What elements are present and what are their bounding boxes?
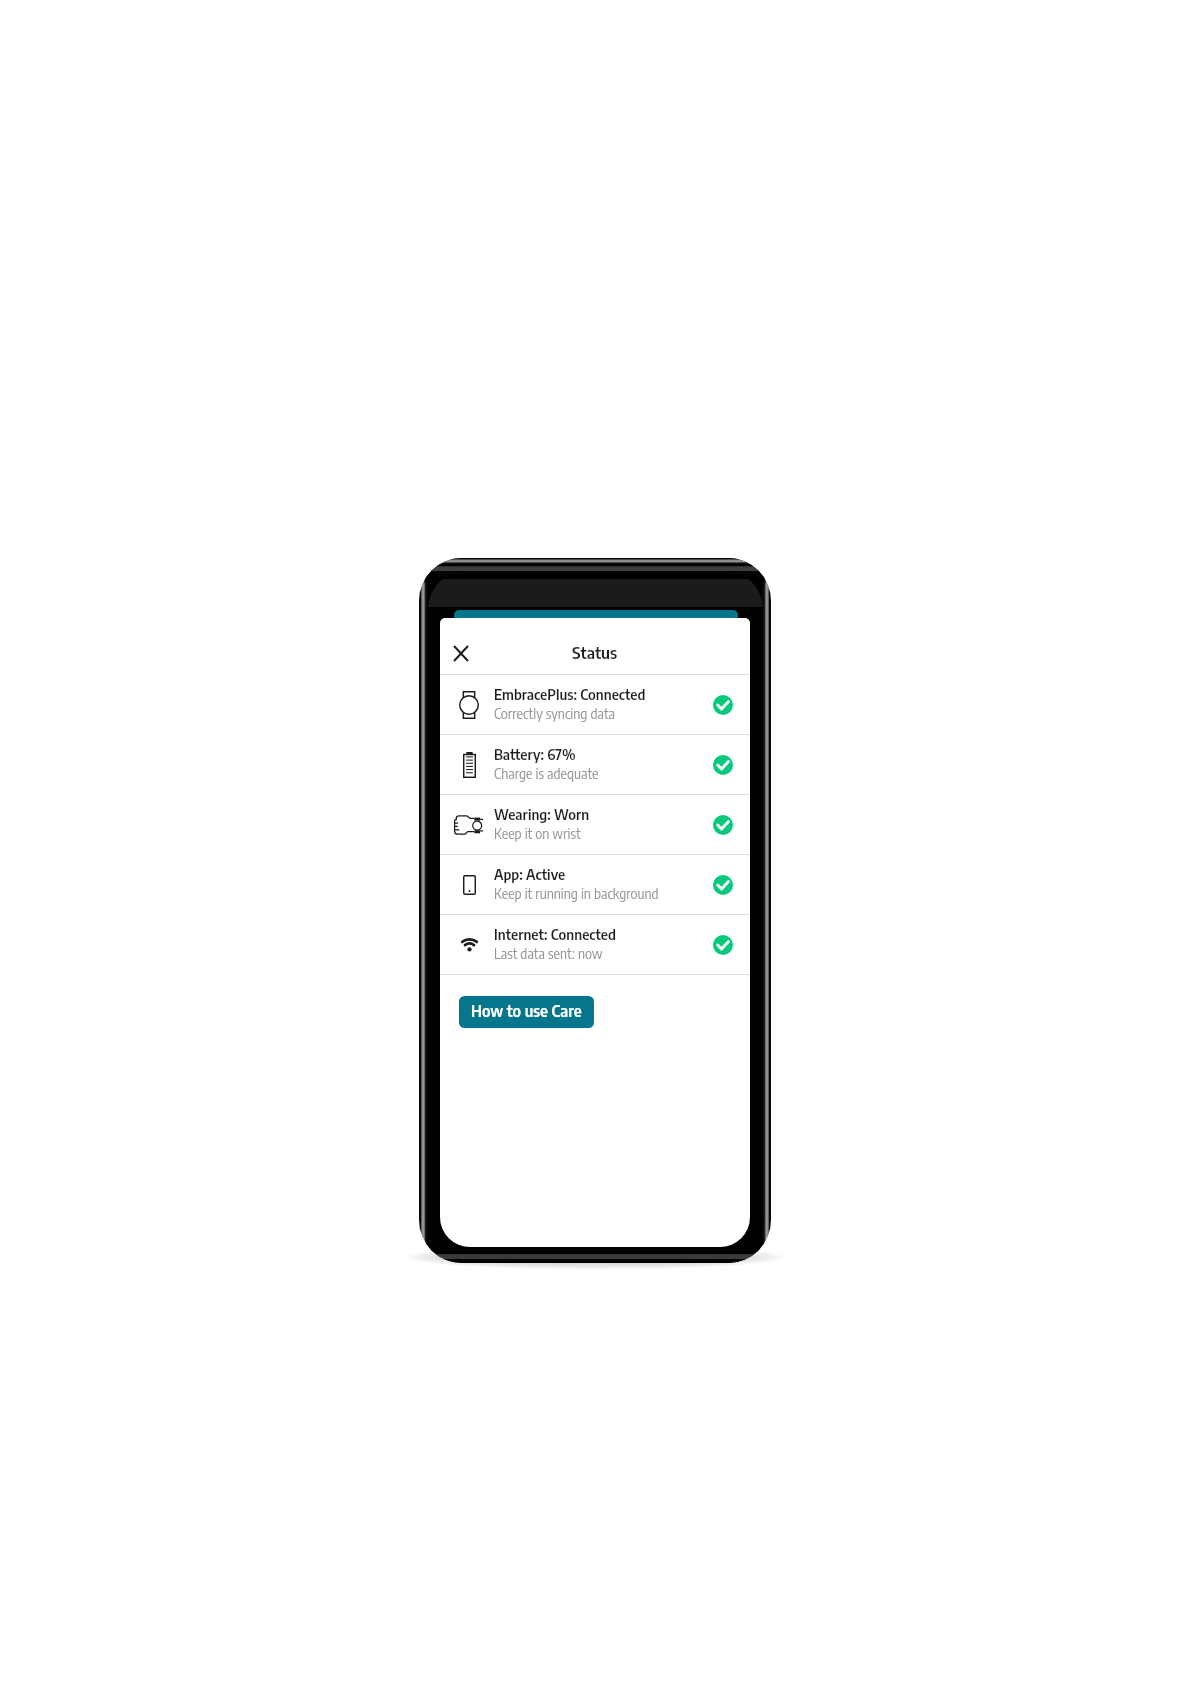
staticText: Status xyxy=(572,642,618,662)
staticText: Keep it on wrist xyxy=(494,825,581,842)
staticText: Keep it running in background xyxy=(494,885,659,902)
staticText: How to use Care xyxy=(471,1001,582,1021)
staticText: App: Active xyxy=(494,865,566,883)
staticText: Battery: 67% xyxy=(494,745,576,763)
staticText: Last data sent: now xyxy=(494,945,603,962)
staticText: Wearing: Worn xyxy=(494,805,590,823)
staticText: Charge is adequate xyxy=(494,765,599,782)
button[interactable]: Wearing: Worn xyxy=(440,795,750,854)
button[interactable]: EmbracePlus: Connected xyxy=(440,675,750,734)
staticText: EmbracePlus: Connected xyxy=(494,685,646,703)
button[interactable]: Battery: 67% xyxy=(440,735,750,794)
button[interactable]: Close xyxy=(443,635,479,671)
staticText: Correctly syncing data xyxy=(494,705,615,722)
button[interactable]: How to use Care xyxy=(459,996,594,1028)
staticText: Internet: Connected xyxy=(494,925,616,943)
button[interactable]: App: Active xyxy=(440,855,750,914)
button[interactable]: Internet: Connected xyxy=(440,915,750,974)
